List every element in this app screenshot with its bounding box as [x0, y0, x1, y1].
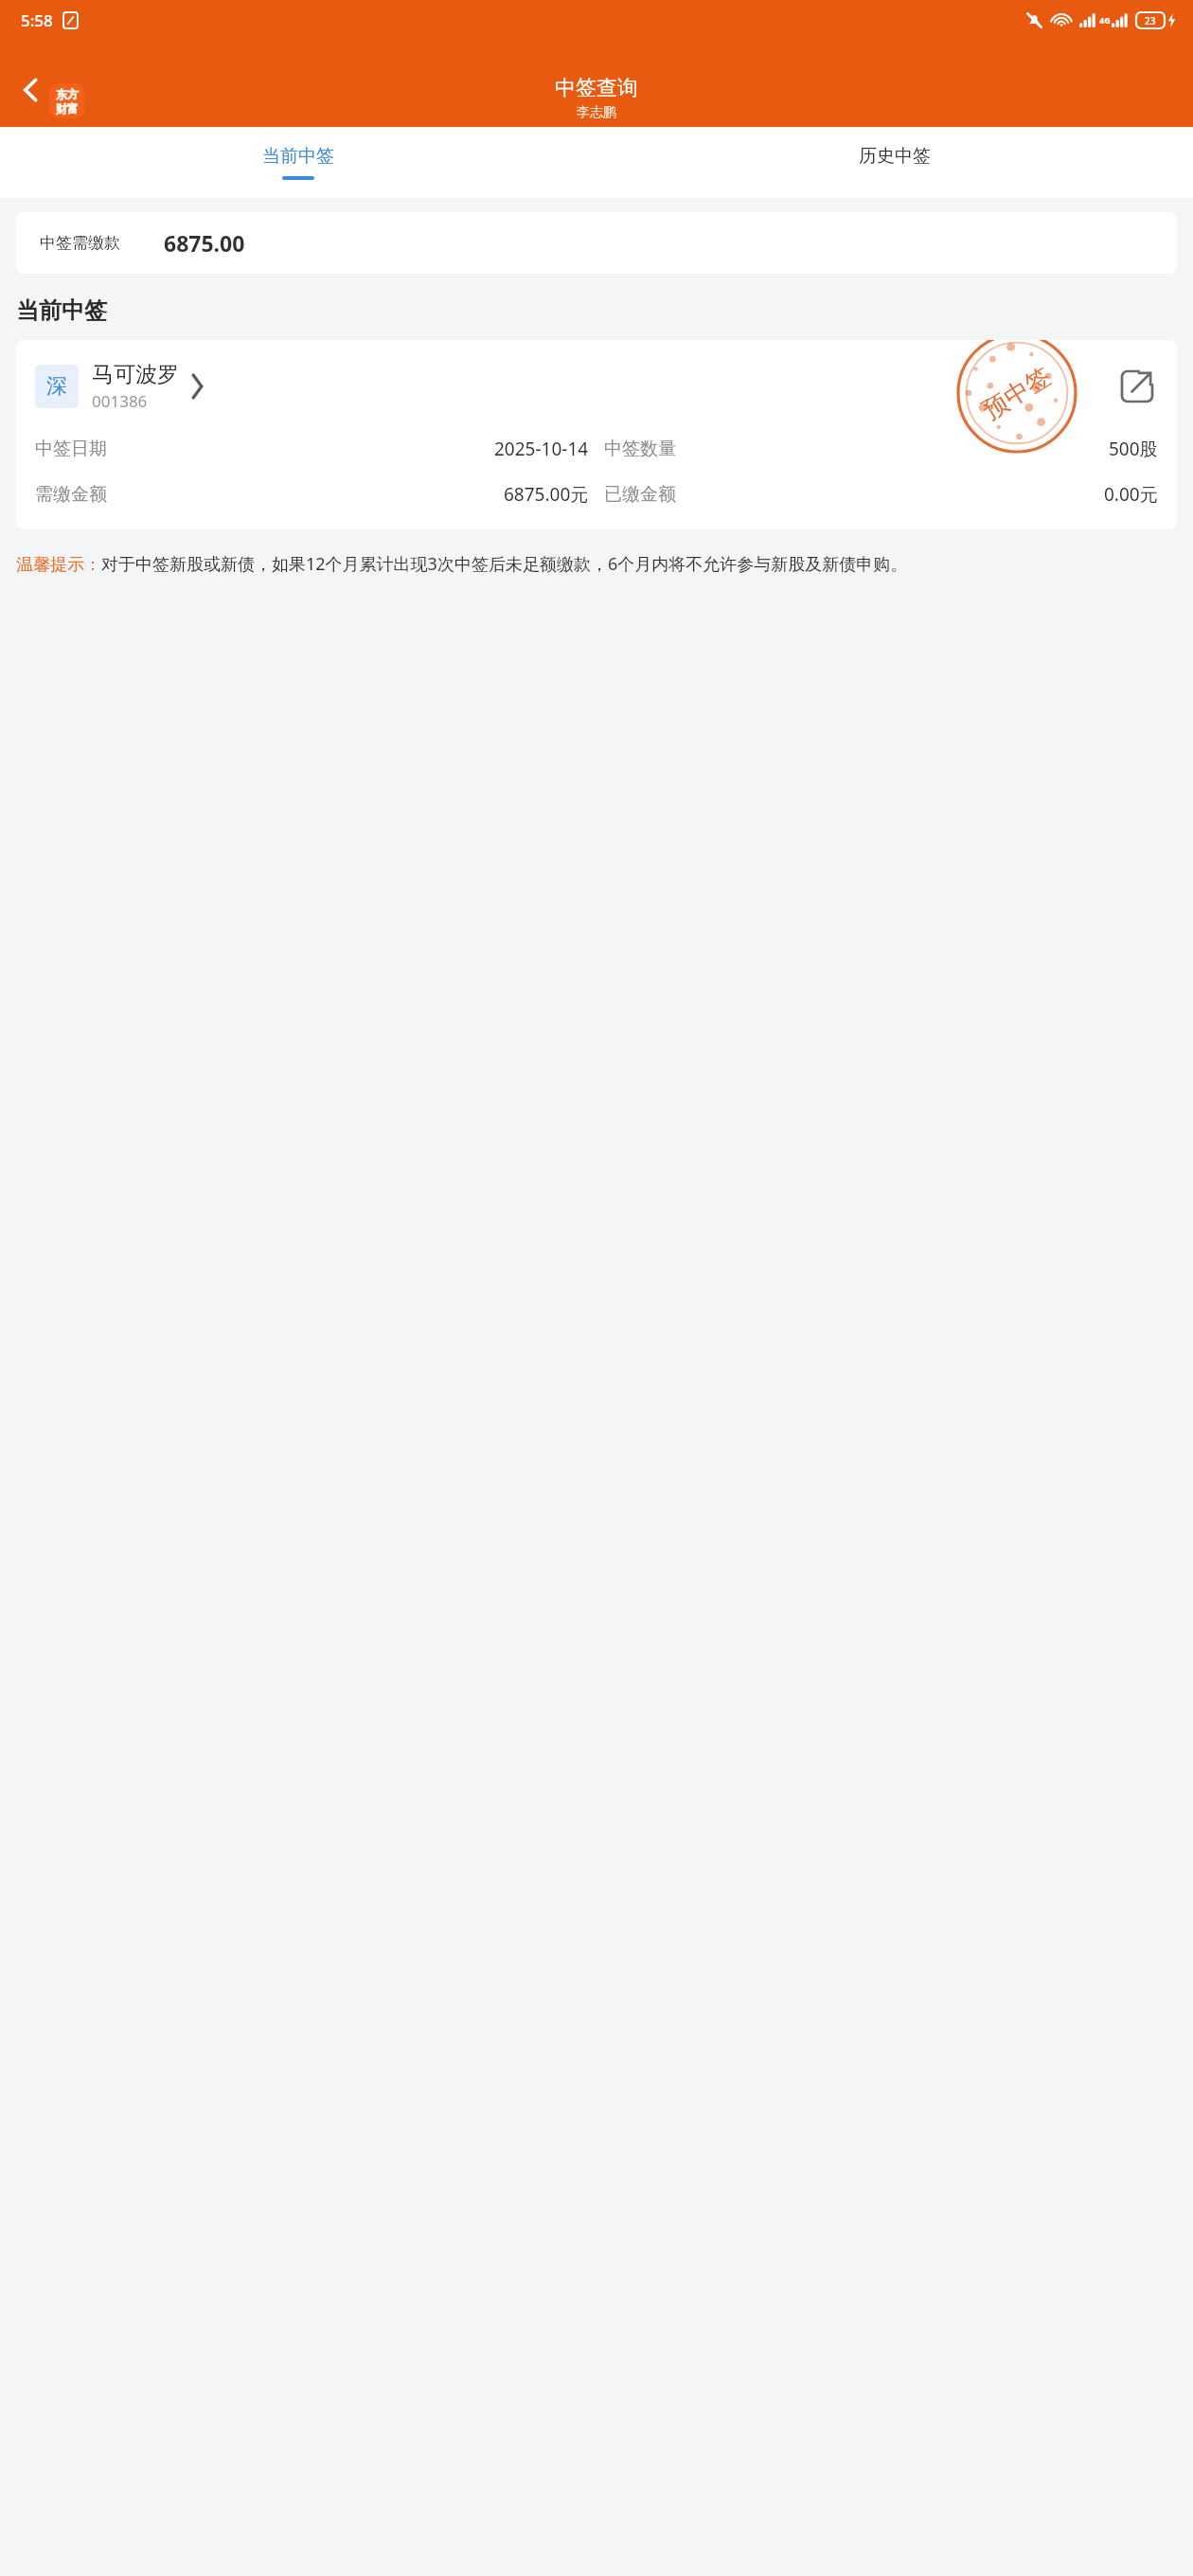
staticText: 0.00元	[1104, 482, 1158, 507]
staticText: 深	[46, 373, 67, 400]
staticText: 已缴金额	[604, 483, 676, 506]
staticText: 当前中签	[16, 296, 107, 325]
staticText: 6875.00元	[504, 482, 589, 507]
staticText: 预中签	[977, 361, 1056, 426]
button[interactable]: 当前中签	[0, 127, 596, 198]
staticText: 6875.00	[164, 228, 245, 258]
button[interactable]: 历史中签	[596, 127, 1193, 198]
button[interactable]: 预中签	[16, 340, 1177, 529]
button[interactable]: 中签需缴款	[16, 212, 1177, 274]
staticText: 历史中签	[859, 145, 931, 168]
staticText: 李志鹏	[577, 104, 616, 121]
staticText: 中签查询	[555, 75, 638, 101]
staticText: 财富	[56, 101, 79, 116]
button[interactable]: 东方财富	[49, 83, 84, 118]
button[interactable]: Share	[1116, 366, 1158, 407]
staticText: 5:58	[21, 9, 53, 31]
staticText: 001386	[92, 390, 148, 412]
staticText: 23	[1145, 14, 1156, 27]
staticText: 4G	[1099, 14, 1111, 26]
staticText: 马可波罗	[92, 361, 179, 388]
button[interactable]: Back	[6, 64, 57, 116]
staticText: 500股	[1109, 437, 1158, 461]
staticText: 温馨提示：对于中签新股或新债，如果12个月累计出现3次中签后未足额缴款，6个月内…	[16, 552, 1177, 576]
staticText: 东方	[56, 87, 79, 101]
staticText: 中签日期	[35, 438, 107, 460]
staticText: 2025-10-14	[494, 437, 589, 461]
staticText: 中签数量	[604, 438, 676, 460]
staticText: 需缴金额	[35, 483, 107, 506]
staticText: 当前中签	[262, 145, 334, 168]
staticText: 中签需缴款	[40, 233, 120, 253]
